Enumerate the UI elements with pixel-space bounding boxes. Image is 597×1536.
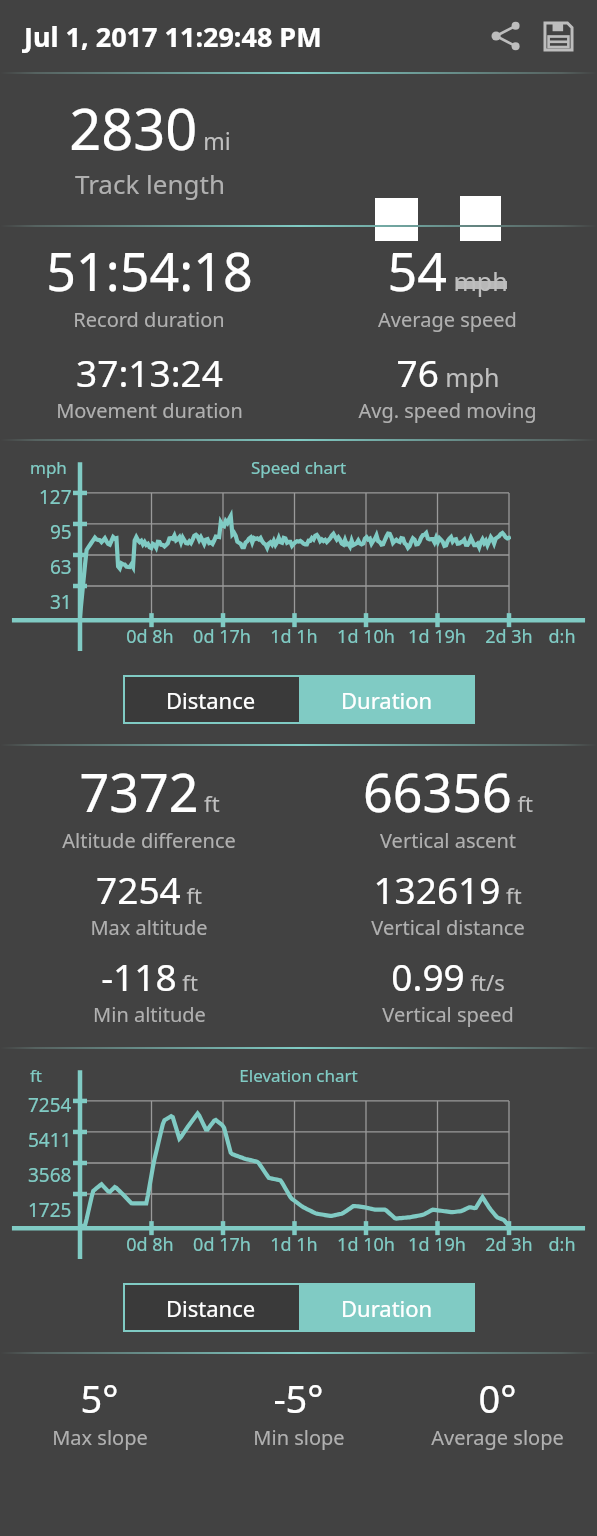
staticText: 95 xyxy=(50,519,72,545)
staticText: Vertical speed xyxy=(382,1001,514,1028)
staticText: Distance xyxy=(166,685,256,715)
staticText: 0d 8h xyxy=(126,1232,174,1257)
staticText: Record duration xyxy=(73,306,225,333)
staticText: 1d 10h xyxy=(337,624,395,649)
staticText: 5411 xyxy=(28,1127,72,1153)
button[interactable]: 76 mph xyxy=(298,347,597,424)
staticText: ft xyxy=(30,1064,42,1087)
staticText: 1d 10h xyxy=(337,1232,395,1257)
button[interactable]: Duration xyxy=(299,675,475,724)
button[interactable]: 132619 ft xyxy=(298,864,597,941)
staticText: 2d 3h xyxy=(485,1232,533,1257)
staticText: d:h xyxy=(548,624,576,649)
staticText: Vertical ascent xyxy=(380,827,516,854)
staticText: 63 xyxy=(50,554,72,580)
button[interactable]: 7372 ft xyxy=(0,756,298,854)
staticText: 7254 xyxy=(28,1092,72,1118)
staticText: 7372 ft xyxy=(79,756,220,827)
staticText: 132619 ft xyxy=(373,864,522,914)
staticText: Speed chart xyxy=(0,456,597,479)
staticText: 0d 17h xyxy=(193,624,251,649)
staticText: 2d 3h xyxy=(485,624,533,649)
staticText: 0° xyxy=(478,1372,517,1424)
button[interactable]: 37:13:24 xyxy=(0,347,298,424)
staticText: Altitude difference xyxy=(62,827,236,854)
staticText: Average speed xyxy=(378,306,517,333)
staticText: -118 ft xyxy=(101,951,198,1001)
button[interactable]: Share xyxy=(483,13,529,59)
staticText: Duration xyxy=(341,1293,433,1323)
staticText: Movement duration xyxy=(56,397,243,424)
staticText: 0d 17h xyxy=(193,1232,251,1257)
staticText: Max slope xyxy=(52,1424,148,1451)
button[interactable]: Distance xyxy=(123,1283,299,1332)
staticText: 66356 ft xyxy=(363,756,533,827)
staticText: d:h xyxy=(548,1232,576,1257)
button[interactable]: 7254 ft xyxy=(0,864,298,941)
staticText: 5° xyxy=(80,1372,119,1424)
button[interactable]: 54 mph xyxy=(298,235,597,333)
staticText: Max altitude xyxy=(90,914,208,941)
staticText: Duration xyxy=(341,685,433,715)
staticText: 2830 mi xyxy=(69,90,231,166)
staticText: 3568 xyxy=(28,1162,72,1188)
button[interactable]: 66356 ft xyxy=(298,756,597,854)
staticText: Average slope xyxy=(431,1424,564,1451)
button[interactable]: 0° xyxy=(398,1372,597,1451)
staticText: Min slope xyxy=(253,1424,345,1451)
staticText: Elevation chart xyxy=(0,1064,597,1087)
staticText: 1d 1h xyxy=(270,624,318,649)
button[interactable]: 0.99 ft/s xyxy=(298,951,597,1028)
staticText: 1725 xyxy=(28,1197,72,1223)
staticText: Min altitude xyxy=(93,1001,206,1028)
staticText: Vertical distance xyxy=(371,914,525,941)
staticText: 0.99 ft/s xyxy=(391,951,505,1001)
staticText: 0d 8h xyxy=(126,624,174,649)
staticText: mph xyxy=(30,456,67,479)
staticText: 51:54:18 xyxy=(46,235,253,306)
staticText: 1d 19h xyxy=(408,624,466,649)
button[interactable]: -118 ft xyxy=(0,951,298,1028)
staticText: 1d 1h xyxy=(270,1232,318,1257)
staticText: 54 mph xyxy=(387,235,508,306)
staticText: 1d 19h xyxy=(408,1232,466,1257)
staticText: 127 xyxy=(39,484,72,510)
staticText: Track length xyxy=(75,166,225,201)
staticText: Jul 1, 2017 11:29:48 PM xyxy=(24,18,322,55)
button[interactable]: 51:54:18 xyxy=(0,235,298,333)
staticText: 37:13:24 xyxy=(76,347,223,397)
button[interactable]: -5° xyxy=(199,1372,398,1451)
staticText: Avg. speed moving xyxy=(358,397,537,424)
staticText: -5° xyxy=(273,1372,324,1424)
staticText: Distance xyxy=(166,1293,256,1323)
staticText: 31 xyxy=(50,589,72,615)
button[interactable]: Duration xyxy=(299,1283,475,1332)
button[interactable]: Save xyxy=(535,13,581,59)
staticText: 7254 ft xyxy=(96,864,202,914)
staticText: 76 mph xyxy=(396,347,500,397)
button[interactable]: 5° xyxy=(0,1372,199,1451)
button[interactable]: Distance xyxy=(123,675,299,724)
